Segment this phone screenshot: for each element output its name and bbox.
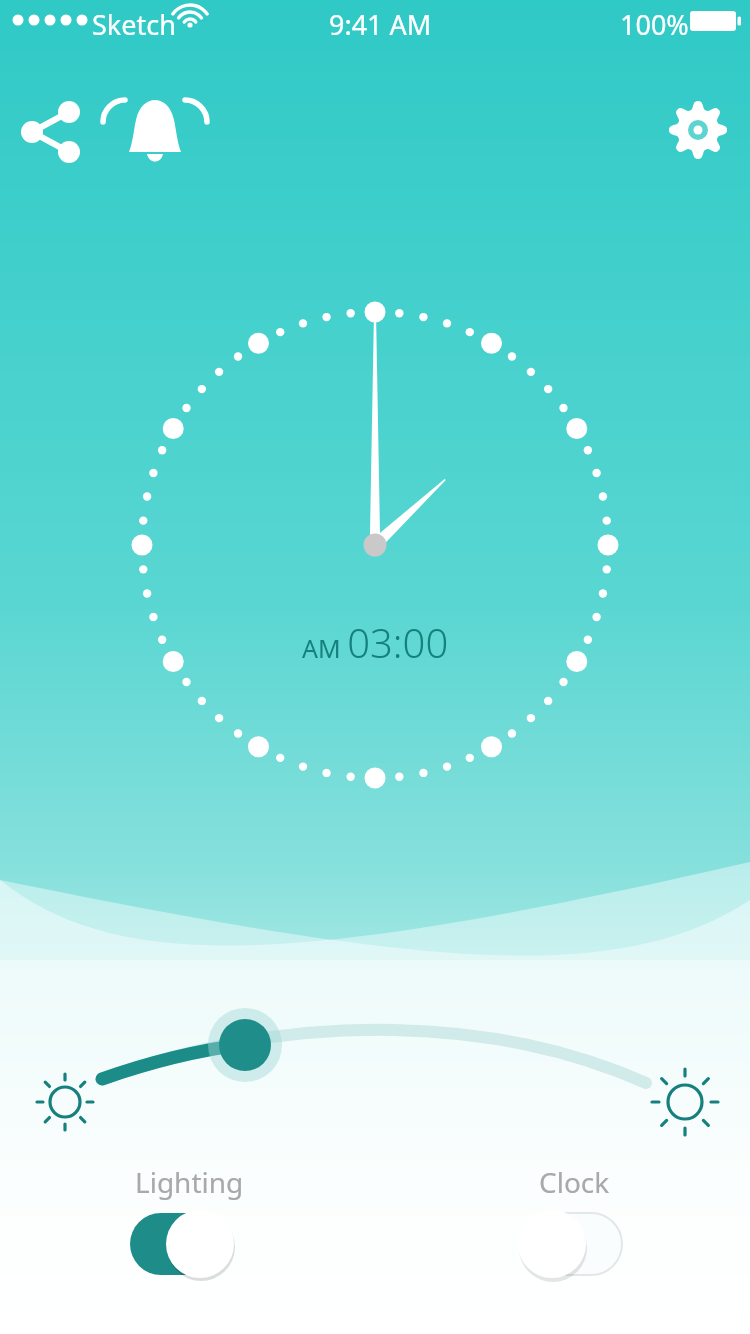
button[interactable]: Alarm <box>125 100 185 160</box>
staticText: 100% <box>620 6 689 43</box>
button[interactable]: Clock toggle <box>520 1213 622 1275</box>
button[interactable]: Share <box>22 100 82 160</box>
staticText: Clock <box>539 1163 610 1201</box>
staticText: AM 03:00 <box>302 615 449 669</box>
button[interactable]: Brightness slider <box>90 1005 660 1095</box>
staticText: Lighting <box>135 1163 244 1201</box>
button[interactable]: Settings <box>668 100 728 160</box>
button[interactable]: Lighting toggle <box>130 1213 232 1275</box>
staticText: Sketch <box>92 6 176 43</box>
staticText: 9:41 AM <box>329 6 432 43</box>
